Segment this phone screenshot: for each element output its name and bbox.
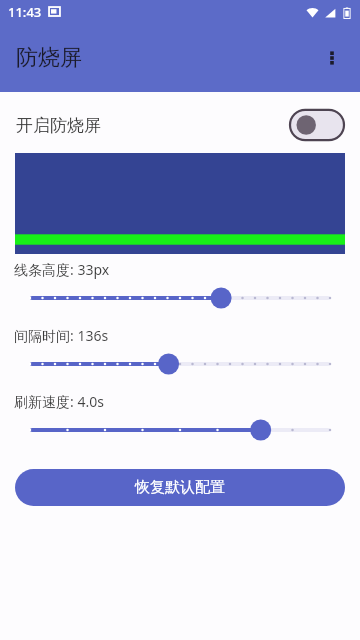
staticText: 11:43	[8, 3, 42, 21]
button[interactable]: 间隔时间: 136s	[0, 345, 360, 383]
staticText: 防烧屏	[16, 44, 82, 72]
button[interactable]: 恢复默认配置	[15, 469, 345, 506]
button[interactable]: More options	[312, 38, 352, 78]
button[interactable]: 开启防烧屏	[0, 104, 360, 146]
staticText: 开启防烧屏	[16, 115, 101, 136]
staticText: 线条高度: 33px	[14, 260, 110, 279]
button[interactable]: 刷新速度: 4.0s	[0, 411, 360, 449]
other: Toggle anti burn-in	[290, 109, 344, 141]
button[interactable]: 线条高度: 33px	[0, 279, 360, 317]
staticText: 间隔时间: 136s	[14, 326, 109, 345]
staticText: 恢复默认配置	[135, 478, 225, 497]
staticText: 刷新速度: 4.0s	[14, 392, 104, 411]
